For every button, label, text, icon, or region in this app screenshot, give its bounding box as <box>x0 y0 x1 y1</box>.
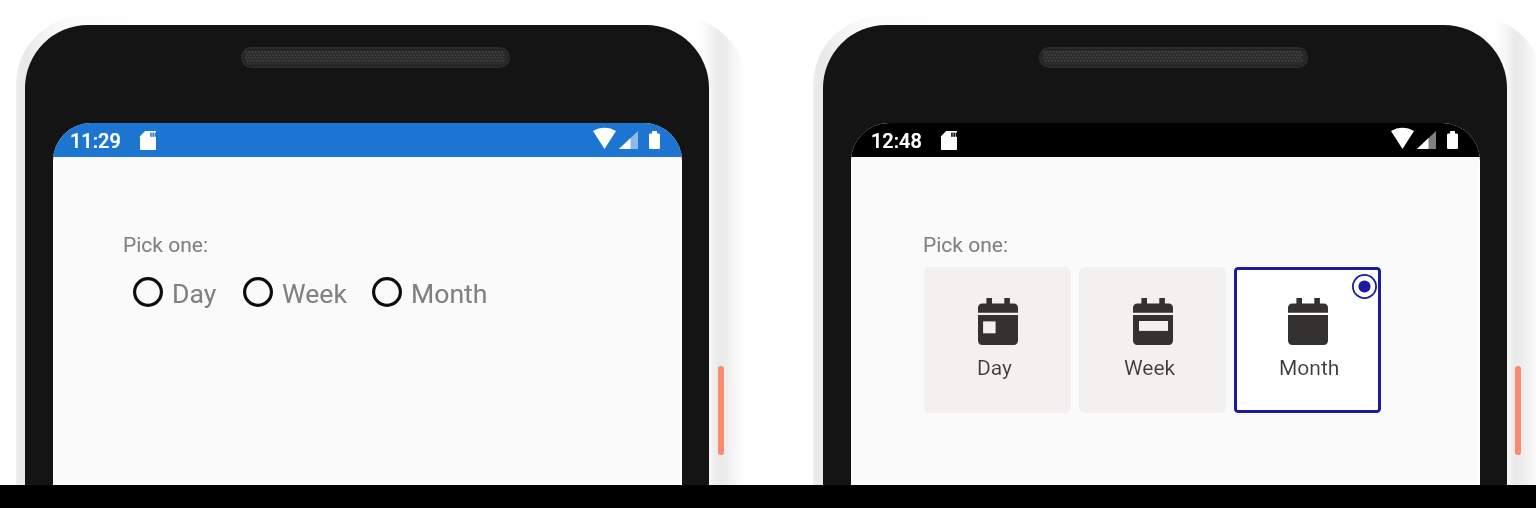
button[interactable]: Day <box>924 267 1071 413</box>
staticText: Day <box>977 356 1012 381</box>
staticText: Day <box>172 278 217 309</box>
staticText: Pick one: <box>923 233 1008 258</box>
staticText: Month <box>1279 356 1340 381</box>
button[interactable]: Month <box>372 276 488 307</box>
button[interactable]: Month <box>1234 267 1381 413</box>
button[interactable]: Week <box>1079 267 1226 413</box>
button[interactable]: Day <box>133 276 243 307</box>
button[interactable]: Week <box>243 276 372 307</box>
staticText: 11:29 <box>70 129 121 152</box>
staticText: Week <box>282 278 347 309</box>
staticText: 12:48 <box>871 129 922 152</box>
staticText: Pick one: <box>123 233 208 258</box>
staticText: Week <box>1124 356 1176 381</box>
staticText: Month <box>411 278 488 309</box>
